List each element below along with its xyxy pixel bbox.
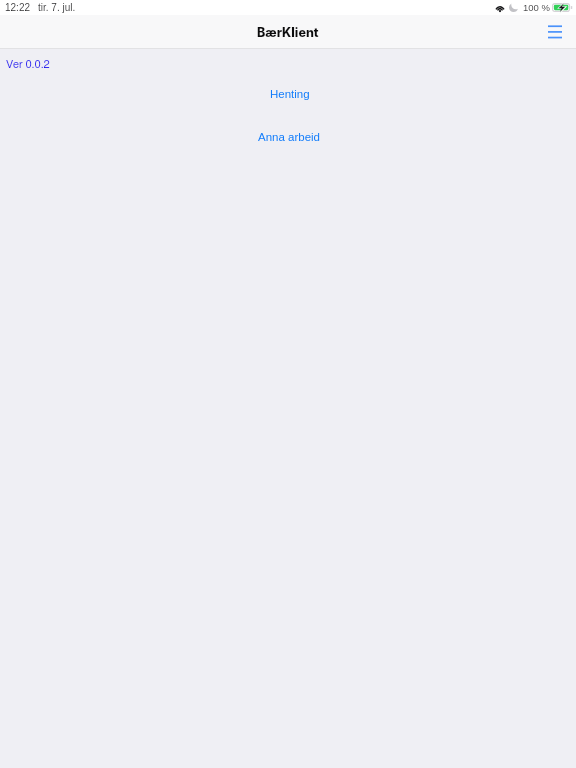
button[interactable]: Henting bbox=[258, 85, 322, 104]
staticText: 12:22 bbox=[5, 2, 31, 13]
staticText: 100 % bbox=[523, 2, 550, 13]
button[interactable]: Anna arbeid bbox=[246, 128, 333, 147]
staticText: tir. 7. jul. bbox=[38, 2, 76, 13]
staticText: Ver 0.0.2 bbox=[6, 59, 50, 70]
staticText: Henting bbox=[270, 88, 310, 101]
button[interactable]: Menu bbox=[540, 17, 570, 47]
staticText: BærKlient bbox=[257, 25, 319, 40]
staticText: Anna arbeid bbox=[258, 131, 321, 144]
